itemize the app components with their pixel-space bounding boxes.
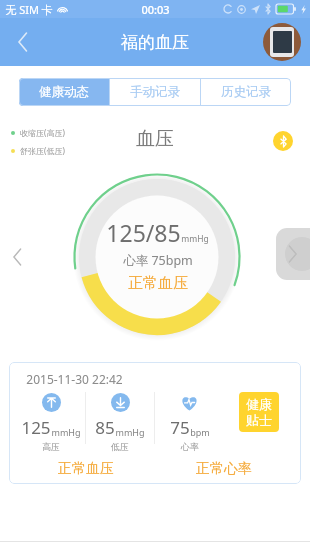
button[interactable]: 手动记录 <box>110 78 200 106</box>
staticText: 血压 <box>136 127 174 151</box>
button[interactable]: 2015-11-30 22:42 <box>9 362 301 484</box>
staticText: 2015-11-30 22:42 <box>26 371 123 387</box>
button[interactable]: 健康动态 <box>19 78 109 106</box>
staticText: 舒张压(低压) <box>20 145 65 156</box>
button[interactable]: Previous <box>0 227 34 287</box>
button[interactable]: 健康 <box>239 392 279 432</box>
staticText: 低压 <box>111 441 129 452</box>
staticText: 125/85 <box>106 217 181 248</box>
staticText: 正常心率 <box>196 460 252 475</box>
staticText: 手动记录 <box>130 84 180 100</box>
staticText: 00:03 <box>141 2 170 17</box>
staticText: 心率 75bpm <box>123 252 193 269</box>
staticText: bpm <box>190 426 210 438</box>
staticText: 85 <box>95 416 115 439</box>
staticText: 健康 <box>246 396 272 412</box>
staticText: 125 <box>21 416 51 439</box>
button[interactable]: 历史记录 <box>201 78 291 106</box>
button[interactable]: Next <box>276 228 310 280</box>
staticText: 贴士 <box>246 412 272 428</box>
button[interactable]: Bluetooth <box>273 131 293 151</box>
button[interactable]: Profile <box>263 23 301 61</box>
staticText: 心率 <box>181 441 199 452</box>
staticText: 健康动态 <box>39 84 89 100</box>
staticText: 高压 <box>42 441 60 452</box>
staticText: 正常血压 <box>128 274 188 293</box>
staticText: 福的血压 <box>121 32 189 53</box>
staticText: 正常血压 <box>58 460 114 475</box>
staticText: mmHg <box>181 233 209 245</box>
staticText: 历史记录 <box>221 84 271 100</box>
staticText: 收缩压(高压) <box>20 127 65 138</box>
staticText: mmHg <box>115 426 145 438</box>
staticText: 无 SIM 卡 <box>5 2 53 17</box>
staticText: mmHg <box>51 426 81 438</box>
button[interactable]: Back <box>0 18 46 66</box>
staticText: 75 <box>170 416 190 439</box>
